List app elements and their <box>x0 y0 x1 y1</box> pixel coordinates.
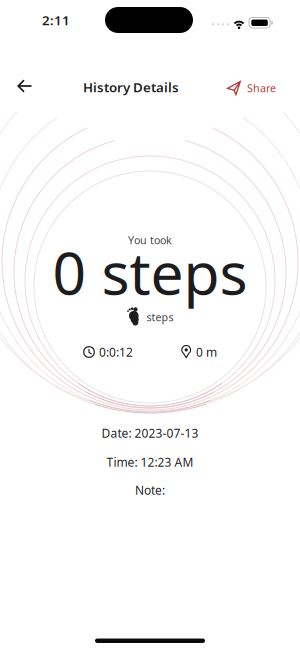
staticText: Time: 12:23 AM <box>106 454 193 470</box>
staticText: You took <box>128 233 172 247</box>
staticText: 0:0:12 <box>99 344 133 360</box>
staticText: Date: 2023-07-13 <box>101 425 198 441</box>
staticText: Share <box>247 81 276 95</box>
staticText: 2:11 <box>42 11 70 29</box>
button[interactable]: Share <box>226 76 276 100</box>
staticText: steps <box>146 310 173 324</box>
staticText: 0 m <box>196 344 217 360</box>
staticText: Note: <box>135 482 165 498</box>
staticText: 0 steps <box>52 233 247 311</box>
staticText: History Details <box>83 78 179 96</box>
button[interactable]: Back <box>7 68 43 104</box>
